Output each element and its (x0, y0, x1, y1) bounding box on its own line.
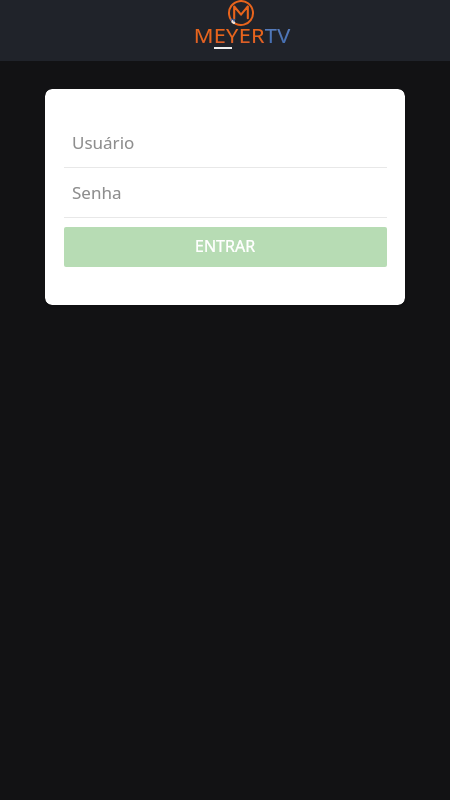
staticText: Senha (72, 181, 122, 204)
staticText: ENTRAR (195, 235, 256, 257)
button[interactable]: ENTRAR (64, 227, 387, 267)
button[interactable]: MeyerTV (186, 0, 296, 45)
button[interactable]: Usuário (64, 117, 387, 167)
button[interactable]: Senha (64, 168, 387, 217)
staticText: Usuário (72, 131, 135, 154)
staticText: TV (265, 23, 291, 49)
staticText: MEYER (194, 23, 265, 49)
